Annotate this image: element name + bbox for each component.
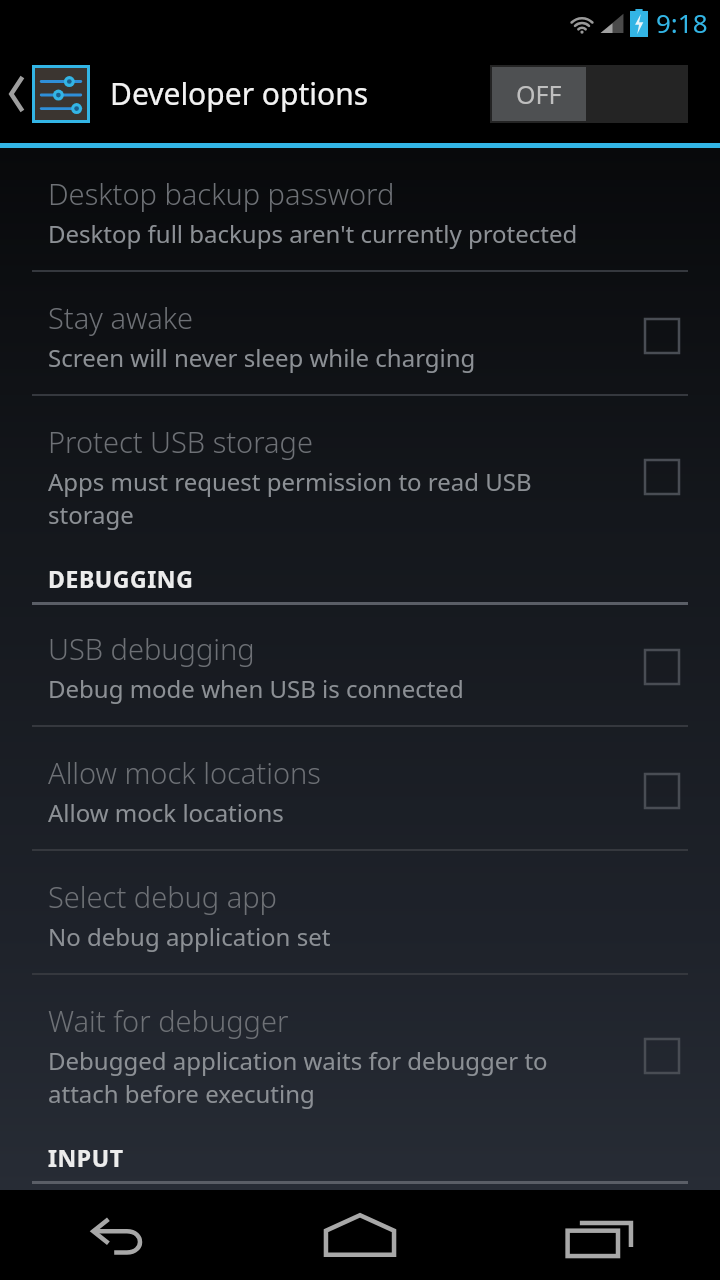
staticText: 9:18 [656, 5, 708, 40]
staticText: Stay awake [48, 298, 194, 337]
staticText: Desktop full backups aren't currently pr… [48, 217, 578, 250]
button[interactable]: Wait for debugger [0, 975, 720, 1124]
staticText: USB debugging [48, 629, 255, 668]
staticText: Apps must request permission to read USB… [48, 465, 608, 531]
button[interactable]: Recent apps [480, 1190, 720, 1280]
button[interactable]: Protect USB storage [0, 396, 720, 545]
button[interactable]: Allow mock locations [0, 727, 720, 849]
staticText: INPUT [48, 1142, 124, 1173]
staticText: Allow mock locations [48, 753, 321, 792]
staticText: OFF [516, 77, 562, 111]
staticText: Select debug app [48, 877, 277, 916]
staticText: DEBUGGING [48, 563, 194, 594]
staticText: Protect USB storage [48, 422, 314, 461]
staticText: Allow mock locations [48, 796, 284, 829]
staticText: Desktop backup password [48, 174, 395, 213]
button[interactable]: Stay awake [0, 272, 720, 394]
button[interactable]: Select debug app [0, 851, 720, 973]
button[interactable]: Desktop backup password [0, 148, 720, 270]
staticText: Debugged application waits for debugger … [48, 1044, 608, 1110]
staticText: Debug mode when USB is connected [48, 672, 464, 705]
button[interactable]: USB debugging [0, 605, 720, 725]
button[interactable]: Home [240, 1190, 480, 1280]
button[interactable]: Back [0, 1190, 240, 1280]
button[interactable]: OFF [490, 65, 688, 123]
button[interactable]: Navigate up [0, 44, 96, 143]
staticText: No debug application set [48, 920, 331, 953]
staticText: Developer options [110, 73, 369, 114]
staticText: Screen will never sleep while charging [48, 341, 476, 374]
staticText: Wait for debugger [48, 1001, 289, 1040]
